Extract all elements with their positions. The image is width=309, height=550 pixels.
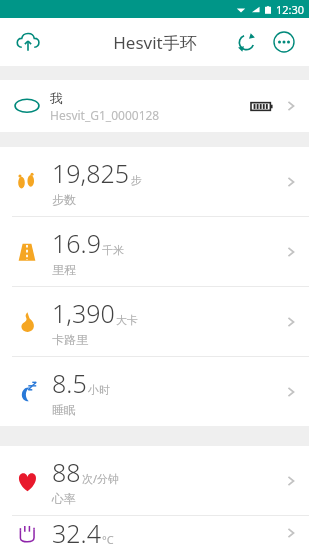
staticText: 大卡: [116, 313, 138, 327]
button[interactable]: 16.9: [0, 217, 309, 286]
staticText: 睡眠: [52, 402, 76, 417]
staticText: 步: [131, 173, 142, 187]
staticText: 心率: [52, 491, 76, 506]
button[interactable]: 8.5: [0, 357, 309, 426]
staticText: Hesvit手环: [113, 31, 197, 54]
staticText: 19,825: [52, 156, 130, 190]
button[interactable]: 我: [0, 80, 309, 132]
staticText: 千米: [102, 243, 124, 257]
staticText: 我: [50, 90, 63, 106]
button[interactable]: More options: [265, 23, 303, 61]
staticText: 里程: [52, 262, 76, 277]
button[interactable]: Upload to cloud: [8, 22, 48, 62]
staticText: 16.9: [52, 226, 101, 260]
staticText: 小时: [88, 383, 110, 397]
staticText: 步数: [52, 192, 76, 207]
staticText: 1,390: [52, 296, 115, 330]
button[interactable]: 88: [0, 446, 309, 515]
staticText: 8.5: [52, 366, 87, 400]
staticText: 次/分钟: [82, 471, 120, 486]
staticText: 88: [52, 455, 81, 489]
staticText: °C: [102, 532, 114, 547]
staticText: 12:30: [276, 2, 305, 17]
staticText: Hesvit_G1_0000128: [50, 107, 160, 123]
button[interactable]: Sync: [227, 23, 265, 61]
button[interactable]: 19,825: [0, 147, 309, 216]
staticText: 卡路里: [52, 332, 88, 347]
button[interactable]: 32.4: [0, 516, 309, 550]
button[interactable]: 1,390: [0, 287, 309, 356]
staticText: 32.4: [52, 516, 101, 550]
